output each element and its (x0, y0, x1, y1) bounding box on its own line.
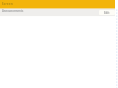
staticText: Announcements (2, 9, 24, 13)
staticText: Screen (2, 2, 14, 6)
staticText: Edit (104, 11, 110, 15)
button[interactable]: Screen (0, 0, 115, 8)
button[interactable]: Edit (99, 10, 115, 15)
